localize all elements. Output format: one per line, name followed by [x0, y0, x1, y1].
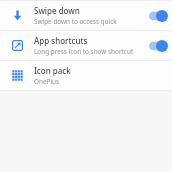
staticText: Swipe down — [34, 5, 80, 16]
button[interactable]: Swipe down — [0, 1, 172, 30]
other: Icon pack — [0, 61, 34, 90]
other: App shortcuts — [0, 31, 34, 60]
button[interactable]: App shortcuts — [0, 31, 172, 60]
other: Swipe down — [0, 1, 34, 30]
button[interactable]: Toggle Swipe down — [144, 1, 172, 30]
staticText: Long press icon to show shortcut menu — [34, 47, 140, 56]
staticText: OnePlus — [34, 77, 60, 86]
staticText: Icon pack — [34, 65, 71, 76]
button[interactable]: Toggle App shortcuts — [144, 31, 172, 60]
staticText: Swipe down to access quick settings — [34, 17, 140, 26]
button[interactable]: Icon pack — [0, 61, 172, 90]
staticText: App shortcuts — [34, 35, 88, 46]
